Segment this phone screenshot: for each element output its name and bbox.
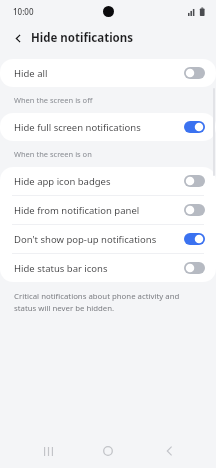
staticText: Hide status bar icons [14, 262, 184, 275]
button[interactable]: Hide from notification panel [0, 196, 216, 224]
button[interactable]: Don't show pop-up notifications [0, 225, 216, 253]
staticText: Hide app icon badges [14, 175, 184, 188]
button[interactable]: Hide all [0, 59, 216, 87]
button[interactable]: Recent apps [35, 438, 61, 464]
staticText: Hide from notification panel [14, 204, 184, 217]
button[interactable]: Back [8, 28, 28, 48]
button[interactable]: Back [156, 438, 182, 464]
staticText: 10:00 [13, 6, 34, 17]
staticText: When the screen is off [14, 95, 93, 105]
staticText: When the screen is on [14, 149, 92, 159]
staticText: Critical notifications about phone activ… [14, 291, 202, 313]
button[interactable]: Hide app icon badges [0, 167, 216, 195]
staticText: Hide notifications [31, 30, 134, 46]
staticText: Don't show pop-up notifications [14, 233, 184, 246]
button[interactable]: Hide status bar icons [0, 254, 216, 282]
button[interactable]: Home [95, 438, 121, 464]
staticText: Hide all [14, 67, 184, 80]
staticText: Hide full screen notifications [14, 121, 184, 134]
button[interactable]: Hide full screen notifications [0, 113, 216, 141]
